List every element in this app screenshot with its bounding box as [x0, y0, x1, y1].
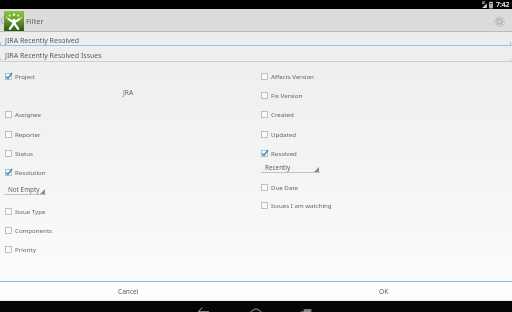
staticText: Created	[271, 110, 294, 118]
button[interactable]: Filter	[0, 9, 44, 32]
button[interactable]: Home	[240, 301, 272, 312]
button[interactable]: Not Empty	[4, 184, 46, 195]
staticText: Project	[15, 72, 36, 80]
staticText: Updated	[271, 130, 296, 138]
button[interactable]: Updated	[261, 128, 296, 140]
button[interactable]: Reporter	[5, 128, 41, 140]
button[interactable]: Status	[5, 147, 33, 159]
button[interactable]: Resolved	[261, 147, 297, 159]
staticText: Assignee	[15, 110, 41, 118]
staticText: Reporter	[15, 130, 41, 138]
staticText: Affects Version	[271, 72, 314, 80]
button[interactable]: Recent apps	[291, 301, 323, 312]
button[interactable]: Settings	[492, 14, 506, 28]
button[interactable]: Resolution	[5, 166, 46, 178]
staticText: Cancel	[118, 287, 139, 296]
staticText: Components	[15, 226, 53, 234]
button[interactable]: Assignee	[5, 108, 41, 120]
button[interactable]: Affects Version	[261, 70, 314, 82]
button[interactable]: Issue Type	[5, 205, 46, 217]
button[interactable]: Created	[261, 108, 294, 120]
button[interactable]: JIRA Recently Resolved Issues	[0, 49, 512, 62]
button[interactable]: Issues I am watching	[261, 199, 332, 211]
staticText: Not Empty	[8, 185, 40, 194]
staticText: Filter	[26, 16, 44, 26]
staticText: Recently	[265, 163, 291, 172]
button[interactable]: Recently	[261, 162, 320, 173]
staticText: Issue Type	[15, 207, 46, 215]
staticText: Priority	[15, 245, 37, 253]
staticText: Resolution	[15, 168, 46, 176]
staticText: JIRA Recently Resolved Issues	[5, 51, 102, 61]
staticText: Resolved	[271, 149, 297, 157]
button[interactable]: JIRA Recently Resolved	[0, 33, 512, 46]
button[interactable]: Cancel	[0, 282, 256, 300]
button[interactable]: Fix Version	[261, 89, 303, 101]
staticText: OK	[379, 287, 389, 296]
staticText: JIRA Recently Resolved	[5, 36, 80, 46]
staticText: Status	[15, 149, 33, 157]
button[interactable]: Due Date	[261, 181, 298, 193]
button[interactable]: Priority	[5, 243, 37, 255]
button[interactable]: Components	[5, 224, 53, 236]
button[interactable]: Back	[189, 301, 221, 312]
staticText: Fix Version	[271, 91, 303, 99]
staticText: Due Date	[271, 183, 298, 191]
staticText: JRA	[123, 88, 134, 97]
button[interactable]: Project	[5, 70, 36, 82]
button[interactable]: OK	[256, 282, 512, 300]
staticText: 7:42	[496, 0, 510, 9]
staticText: Issues I am watching	[271, 201, 332, 209]
